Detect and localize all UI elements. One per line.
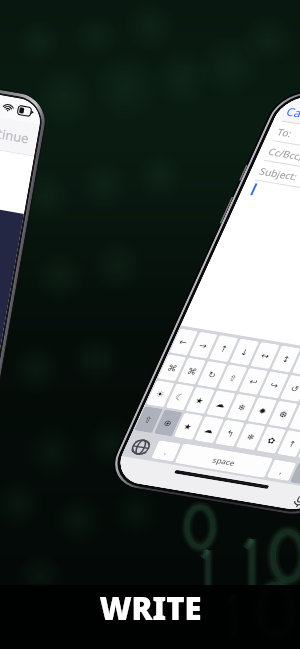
button[interactable]: key ↰ — [208, 413, 252, 454]
button[interactable]: key ⌘ — [150, 348, 194, 388]
staticText: ↻ — [203, 367, 221, 383]
button[interactable]: key ↪ — [252, 364, 296, 405]
staticText: ❄ — [233, 400, 251, 416]
staticText: ↑ — [215, 341, 233, 357]
button[interactable]: key → — [182, 325, 225, 365]
staticText: ↓ — [236, 345, 253, 361]
staticText: ❆ — [275, 407, 292, 423]
button[interactable]: key ★ — [166, 406, 211, 447]
button[interactable]: key ↑ — [201, 328, 246, 369]
button[interactable]: Cc/Bcc, From: mail@icloud.com — [250, 66, 300, 267]
staticText: ⌘ — [163, 360, 181, 377]
staticText: ⌘ — [183, 363, 201, 380]
staticText: ☾ — [171, 389, 189, 406]
staticText: ✹ — [254, 403, 271, 419]
staticText: return — [297, 462, 300, 489]
staticText: ⇧ — [140, 412, 157, 428]
button[interactable]: key ↺ — [272, 368, 300, 409]
button[interactable]: To: — [259, 46, 300, 247]
staticText: ↕ — [277, 351, 295, 367]
button[interactable]: key ☾ — [158, 377, 202, 417]
button[interactable]: key ↻ — [190, 354, 234, 395]
staticText: → — [194, 338, 212, 354]
button[interactable]: key ⌘ — [170, 351, 213, 391]
button[interactable]: key ❄ — [228, 416, 273, 457]
staticText: ☀ — [151, 386, 170, 403]
button[interactable]: key ↔ — [243, 335, 287, 376]
staticText: Subject: — [253, 151, 300, 197]
button[interactable]: key ❄ — [219, 387, 264, 428]
button[interactable]: key ✹ — [240, 390, 285, 431]
staticText: ☁ — [200, 422, 218, 439]
button[interactable]: key . — [146, 432, 186, 469]
staticText: ↑ — [284, 436, 300, 452]
button[interactable]: key ← — [162, 322, 205, 362]
button[interactable]: key ☀ — [138, 374, 182, 414]
button[interactable]: key ✿ — [249, 420, 293, 460]
staticText: ❄ — [242, 429, 259, 445]
button[interactable]: key ❄ — [290, 427, 300, 467]
staticText: ✿ — [263, 433, 280, 449]
button[interactable]: key ⬆ — [293, 371, 300, 412]
button[interactable]: key ☁ — [187, 409, 231, 450]
staticText: WRITE — [99, 587, 202, 629]
staticText: Continue — [0, 120, 31, 148]
button[interactable]: key ⊕ — [146, 403, 190, 443]
button[interactable]: Emoji — [117, 425, 164, 468]
staticText: ⊕ — [159, 415, 177, 431]
staticText: Cc/Bcc, From: mail@icloud.com — [262, 92, 300, 234]
button[interactable]: key , — [261, 452, 300, 489]
button[interactable]: key ⇧ — [210, 357, 255, 398]
staticText: ✶ — [295, 410, 300, 426]
staticText: ★ — [191, 392, 209, 409]
staticText: , — [275, 464, 289, 477]
staticText: ↰ — [221, 426, 239, 442]
staticText: ★ — [179, 418, 197, 435]
button[interactable]: space — [168, 411, 279, 510]
staticText: ☁ — [211, 396, 230, 413]
staticText: ↩ — [245, 374, 262, 390]
staticText: ↺ — [286, 381, 300, 397]
button[interactable]: key ↓ — [222, 332, 267, 372]
staticText: To: — [271, 120, 298, 145]
button[interactable]: Subject: — [241, 85, 300, 287]
button[interactable]: key ☁ — [199, 383, 243, 424]
button[interactable]: key ↕ — [263, 339, 300, 379]
staticText: ↖ — [298, 355, 300, 371]
staticText: ↪ — [266, 377, 283, 393]
button[interactable]: key ❆ — [261, 394, 300, 435]
staticText: ↔ — [257, 348, 274, 364]
staticText: ⇧ — [224, 370, 242, 386]
staticText: ← — [175, 334, 192, 350]
button[interactable]: Cancel — [280, 90, 300, 138]
button[interactable]: Dictate — [285, 489, 300, 514]
button[interactable]: key ⇧ — [127, 400, 170, 439]
button[interactable]: key ↑ — [270, 423, 300, 464]
staticText: space — [208, 446, 240, 476]
button[interactable]: key ↖ — [284, 342, 300, 383]
staticText: . — [159, 444, 174, 458]
button[interactable]: key ★ — [178, 380, 222, 421]
button[interactable]: key ✶ — [281, 397, 300, 438]
button[interactable]: key ↩ — [231, 361, 276, 402]
button[interactable]: return — [284, 449, 300, 501]
